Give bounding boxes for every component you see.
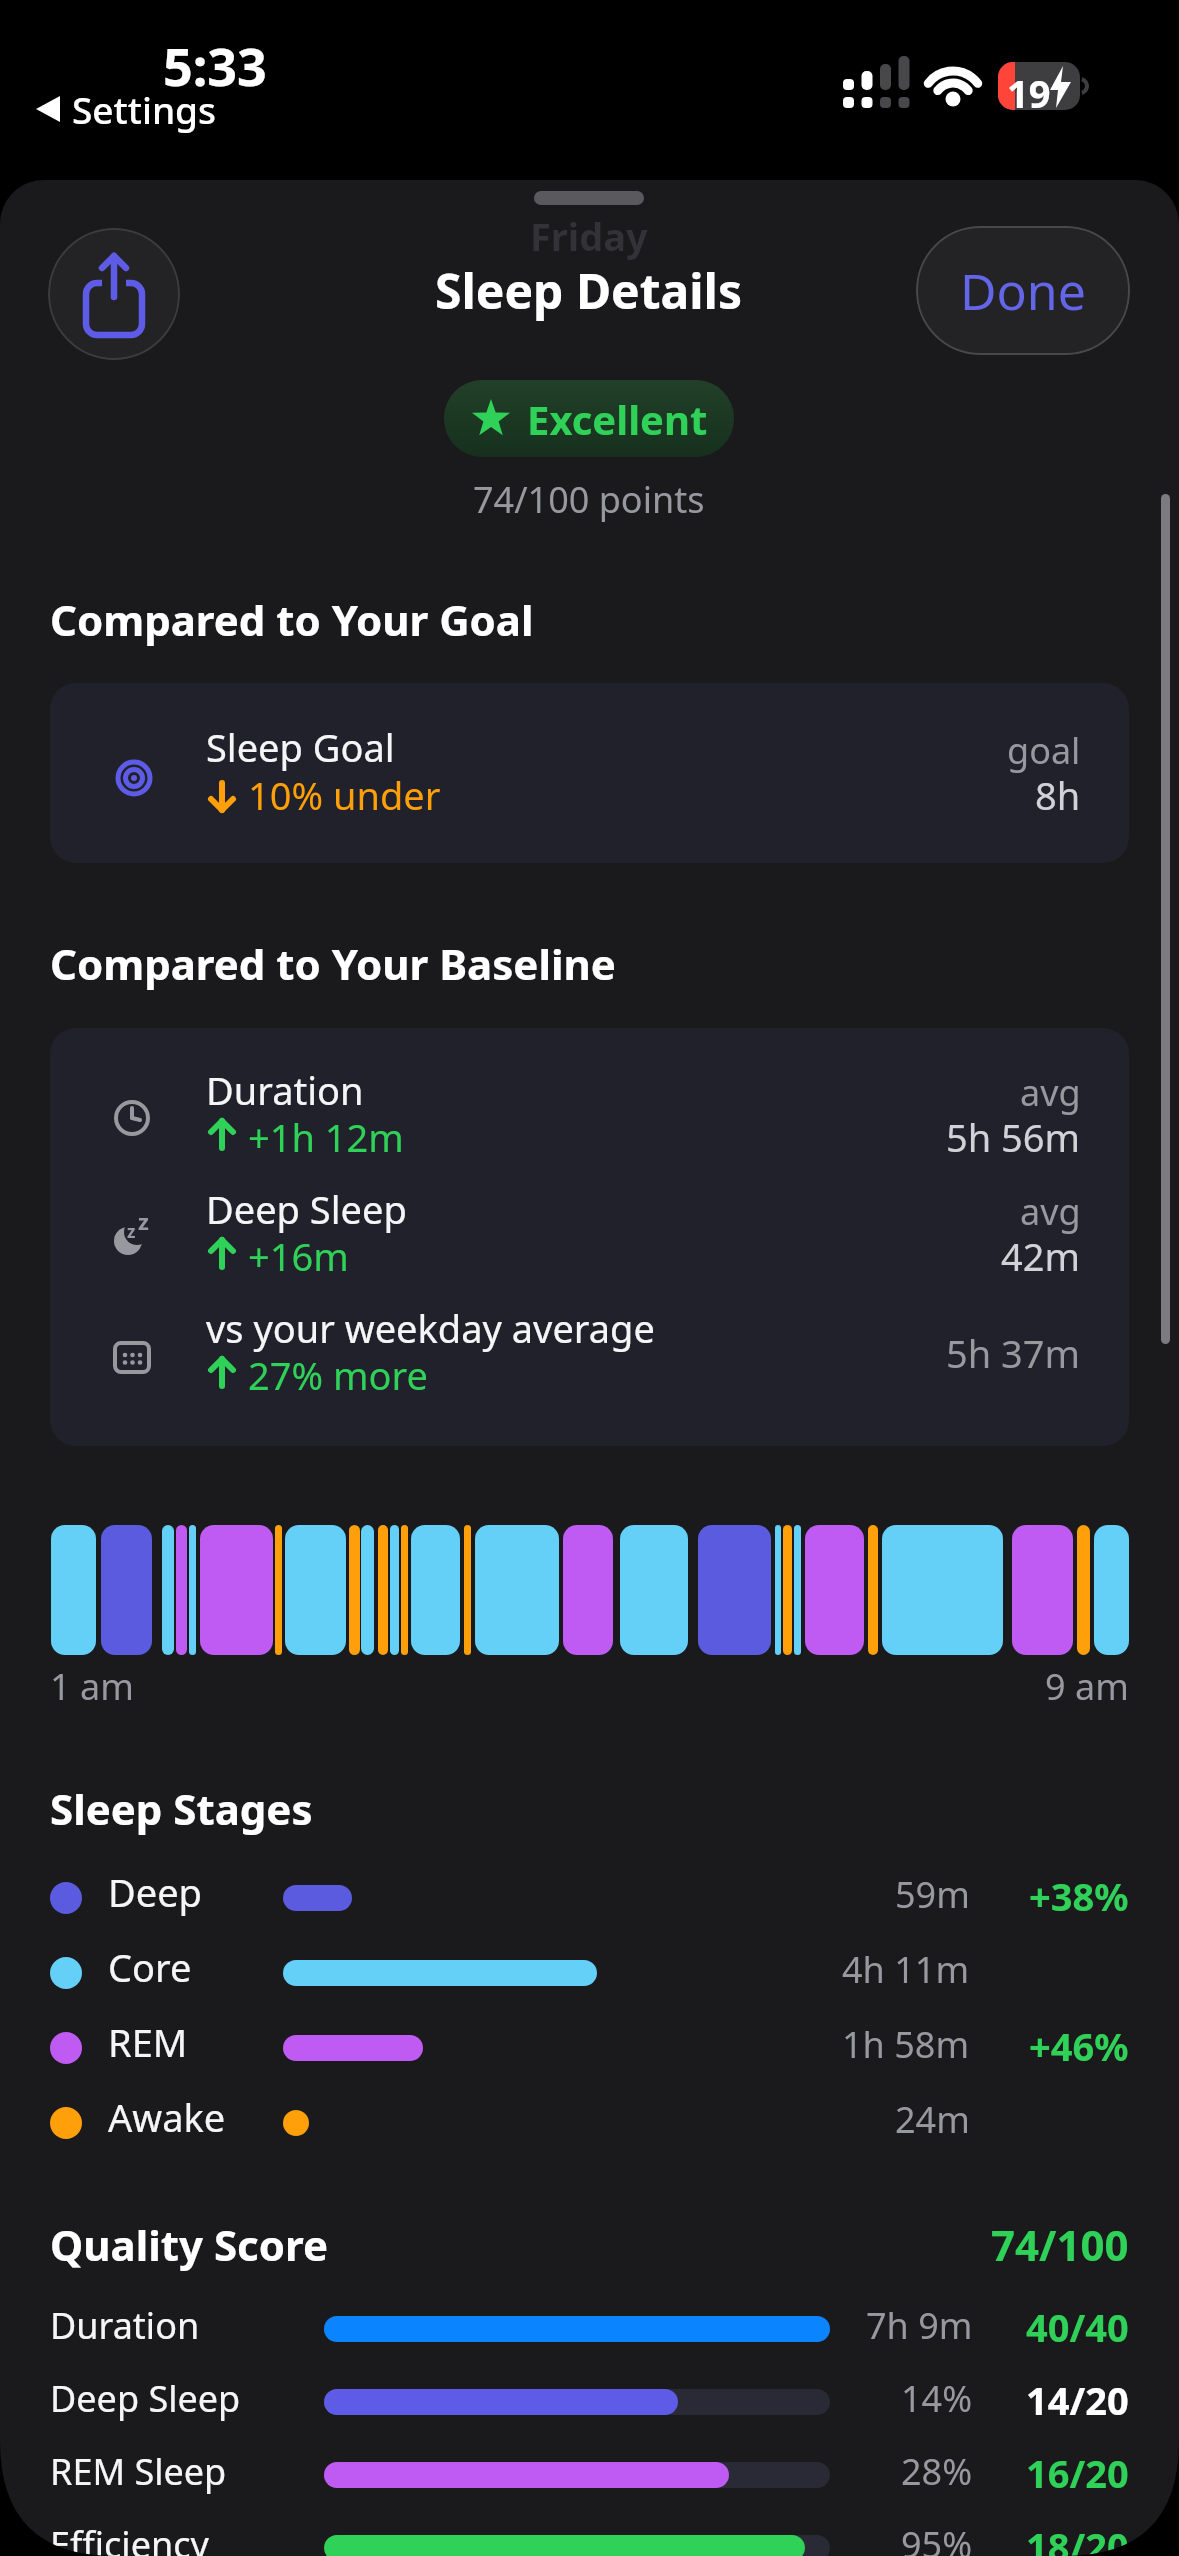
staticText: 95%	[901, 2520, 973, 2556]
staticText: REM	[108, 2016, 188, 2068]
staticText: avg	[1020, 1187, 1081, 1236]
button[interactable]: Sleep Goal	[50, 683, 1129, 863]
staticText: Duration	[50, 2301, 200, 2350]
button[interactable]	[48, 228, 180, 360]
staticText: 4h 11m	[842, 1945, 970, 1994]
staticText: 28%	[901, 2447, 973, 2496]
staticText: Deep Sleep	[206, 1183, 407, 1235]
staticText: Duration	[206, 1064, 364, 1116]
staticText: 16/20	[1026, 2447, 1129, 2499]
staticText: Sleep Details	[435, 258, 743, 323]
staticText: vs your weekday average	[206, 1302, 655, 1354]
staticText: 8h	[1035, 769, 1081, 821]
staticText: 59m	[895, 1870, 970, 1919]
button[interactable]: Done	[916, 226, 1130, 355]
staticText: +46%	[1029, 2020, 1129, 2072]
staticText: 18/20	[1026, 2520, 1129, 2556]
button[interactable]: Duration	[50, 1028, 1129, 1446]
staticText: 19	[1007, 67, 1051, 119]
staticText: avg	[1020, 1068, 1081, 1117]
staticText: 14/20	[1026, 2374, 1129, 2426]
staticText: Deep Sleep	[50, 2374, 241, 2423]
staticText: 40/40	[1026, 2301, 1129, 2353]
staticText: 74/100	[991, 2216, 1129, 2273]
button[interactable]: Excellent	[444, 380, 734, 457]
staticText: 74/100 points	[473, 475, 705, 524]
staticText: +38%	[1029, 1870, 1129, 1922]
staticText: 7h 9m	[866, 2301, 973, 2350]
staticText: 14%	[901, 2374, 973, 2423]
staticText: Friday	[530, 210, 648, 262]
staticText: Excellent	[527, 392, 708, 446]
staticText: 1h 58m	[842, 2020, 970, 2069]
staticText: 10% under	[248, 769, 441, 821]
staticText: 9 am	[1045, 1662, 1129, 1711]
staticText: +16m	[248, 1230, 349, 1282]
staticText: 42m	[1001, 1230, 1081, 1282]
staticText: 27% more	[248, 1349, 428, 1401]
staticText: 5:33	[163, 30, 267, 101]
staticText: 5h 37m	[946, 1327, 1081, 1379]
staticText: Compared to Your Baseline	[50, 935, 616, 992]
staticText: Settings	[72, 84, 217, 134]
staticText: 1 am	[50, 1662, 134, 1711]
staticText: Deep	[108, 1866, 202, 1918]
staticText: Efficiency	[50, 2520, 209, 2556]
staticText: 5h 56m	[946, 1111, 1081, 1163]
staticText: z	[127, 1220, 136, 1243]
staticText: Sleep Goal	[206, 721, 395, 773]
staticText: 24m	[895, 2095, 970, 2144]
staticText: Awake	[108, 2091, 226, 2143]
staticText: REM Sleep	[50, 2447, 227, 2496]
staticText: Done	[960, 257, 1086, 325]
staticText: +1h 12m	[248, 1111, 404, 1163]
staticText: Core	[108, 1941, 192, 1993]
staticText: z	[138, 1206, 149, 1236]
staticText: Quality Score	[50, 2216, 328, 2273]
staticText: goal	[1007, 726, 1081, 775]
staticText: Sleep Stages	[50, 1780, 313, 1837]
staticText: Compared to Your Goal	[50, 591, 534, 648]
